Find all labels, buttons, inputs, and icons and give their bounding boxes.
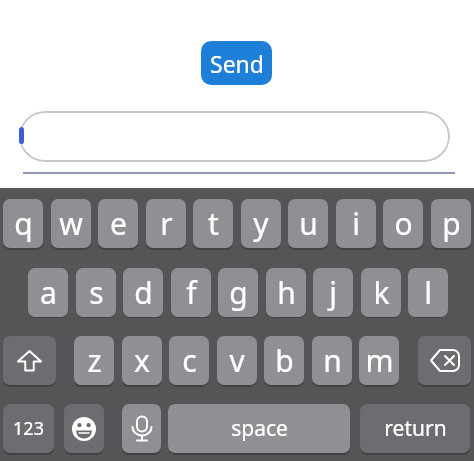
button[interactable]: v: [217, 336, 257, 385]
button[interactable]: i: [336, 199, 376, 248]
staticText: d: [134, 272, 153, 313]
button[interactable]: [418, 336, 471, 385]
staticText: h: [277, 272, 296, 313]
button[interactable]: 123: [3, 404, 54, 453]
staticText: l: [424, 272, 432, 313]
button[interactable]: s: [76, 268, 116, 317]
button[interactable]: y: [241, 199, 281, 248]
button[interactable]: return: [360, 404, 470, 453]
button[interactable]: p: [431, 199, 471, 248]
button[interactable]: g: [218, 268, 258, 317]
button[interactable]: [122, 404, 161, 453]
staticText: r: [160, 203, 173, 244]
button[interactable]: w: [51, 199, 91, 248]
staticText: w: [59, 203, 83, 244]
staticText: j: [329, 272, 337, 313]
staticText: z: [87, 340, 102, 381]
button[interactable]: n: [312, 336, 352, 385]
staticText: b: [275, 340, 294, 381]
button[interactable]: a: [28, 268, 68, 317]
button[interactable]: c: [169, 336, 209, 385]
button[interactable]: j: [313, 268, 353, 317]
button[interactable]: f: [171, 268, 211, 317]
staticText: m: [365, 340, 394, 381]
button[interactable]: h: [266, 268, 306, 317]
staticText: t: [208, 203, 219, 244]
staticText: s: [89, 272, 104, 313]
staticText: a: [40, 272, 57, 313]
staticText: x: [134, 340, 150, 381]
button[interactable]: x: [122, 336, 162, 385]
staticText: k: [373, 272, 390, 313]
staticText: e: [110, 203, 127, 244]
staticText: g: [229, 272, 248, 313]
button[interactable]: o: [383, 199, 423, 248]
staticText: q: [14, 203, 33, 244]
button[interactable]: l: [408, 268, 448, 317]
button[interactable]: t: [193, 199, 233, 248]
staticText: space: [231, 414, 288, 443]
staticText: c: [182, 340, 197, 381]
staticText: Send: [210, 48, 264, 79]
staticText: 123: [13, 416, 44, 441]
button[interactable]: b: [264, 336, 304, 385]
button[interactable]: z: [74, 336, 114, 385]
staticText: n: [323, 340, 342, 381]
button[interactable]: [3, 336, 56, 385]
button[interactable]: m: [359, 336, 399, 385]
staticText: o: [394, 203, 413, 244]
staticText: return: [384, 414, 447, 443]
staticText: i: [352, 203, 360, 244]
button[interactable]: space: [168, 404, 350, 453]
staticText: f: [186, 272, 197, 313]
staticText: p: [442, 203, 461, 244]
staticText: u: [299, 203, 318, 244]
button[interactable]: e: [98, 199, 138, 248]
button[interactable]: d: [123, 268, 163, 317]
button[interactable]: q: [3, 199, 43, 248]
button[interactable]: Send: [201, 41, 272, 85]
button[interactable]: r: [146, 199, 186, 248]
button[interactable]: [64, 404, 104, 453]
button[interactable]: k: [361, 268, 401, 317]
button[interactable]: u: [288, 199, 328, 248]
staticText: y: [253, 203, 269, 244]
staticText: v: [229, 340, 245, 381]
button[interactable]: [19, 111, 450, 162]
